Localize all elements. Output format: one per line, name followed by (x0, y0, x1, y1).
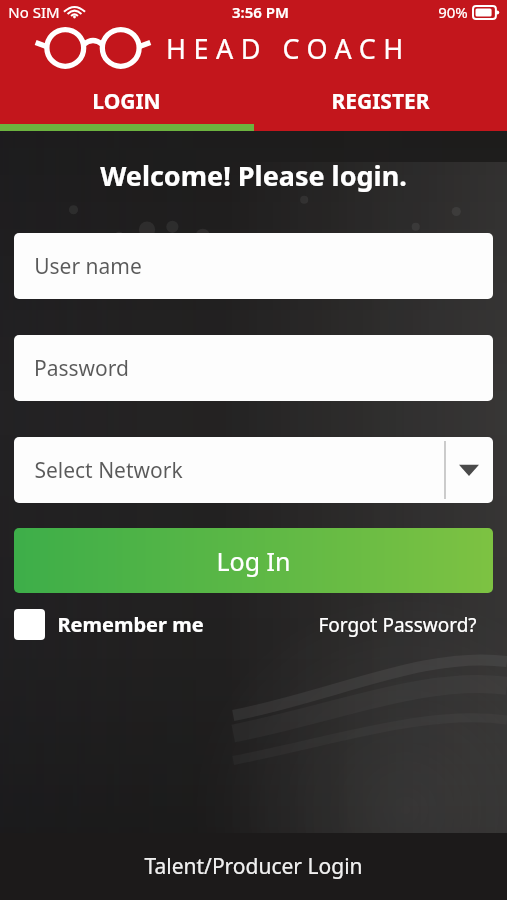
staticText: LOGIN (92, 87, 161, 116)
button[interactable]: Remember me (14, 609, 204, 640)
staticText: Select Network (34, 456, 183, 485)
button[interactable]: Log In (14, 528, 493, 593)
button[interactable]: LOGIN (0, 78, 253, 124)
button[interactable]: Talent/Producer Login (0, 833, 507, 900)
button[interactable]: User name (14, 233, 493, 299)
staticText: Welcome! Please login. (100, 157, 407, 194)
staticText: Remember me (57, 611, 204, 638)
staticText: REGISTER (331, 87, 430, 116)
staticText: User name (34, 252, 142, 281)
staticText: Password (34, 354, 129, 383)
button[interactable]: REGISTER (253, 78, 507, 124)
button[interactable]: Forgot Password? (318, 612, 493, 638)
staticText: Forgot Password? (318, 612, 477, 638)
button[interactable]: Password (14, 335, 493, 401)
button[interactable]: Select Network (14, 437, 493, 503)
staticText: Log In (216, 544, 291, 578)
staticText: 3:56 PM (232, 2, 289, 22)
staticText: HEAD COACH (166, 30, 411, 67)
staticText: 90% (438, 2, 468, 22)
staticText: Talent/Producer Login (144, 852, 363, 881)
staticText: No SIM (8, 2, 60, 22)
